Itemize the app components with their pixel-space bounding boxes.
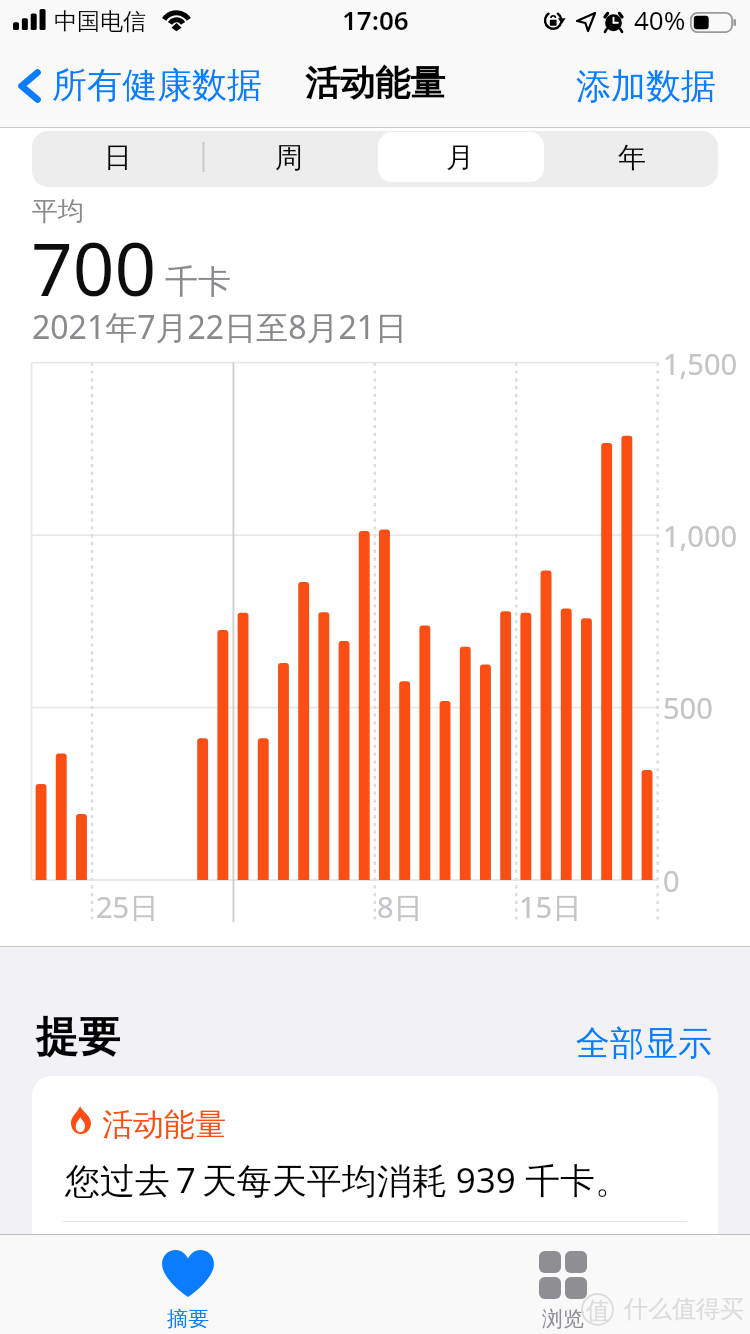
staticText: 15日	[519, 887, 582, 927]
button[interactable]: 日	[32, 131, 203, 187]
button[interactable]: 年	[546, 131, 718, 187]
staticText: 8日	[377, 887, 423, 927]
staticText: 1,500	[663, 344, 738, 383]
staticText: 周	[275, 140, 303, 175]
staticText: 40%	[634, 2, 686, 37]
staticText: 什么值得买	[624, 1294, 744, 1324]
staticText: 日	[104, 140, 132, 175]
button[interactable]: 浏览	[375, 1234, 750, 1334]
staticText: 活动能量	[305, 61, 445, 105]
staticText: 添加数据	[576, 64, 716, 108]
staticText: 500	[663, 688, 713, 727]
staticText: 25日	[96, 887, 159, 927]
staticText: 年	[618, 140, 646, 175]
staticText: 浏览	[542, 1306, 584, 1332]
button[interactable]: 摘要	[0, 1234, 375, 1334]
staticText: 千卡	[165, 261, 231, 303]
staticText: 所有健康数据	[52, 63, 262, 107]
button[interactable]: 全部显示	[560, 1012, 734, 1075]
staticText: 0	[663, 861, 680, 900]
staticText: 月	[446, 140, 474, 175]
staticText: 中国电信	[54, 7, 146, 36]
button[interactable]: 所有健康数据	[2, 56, 272, 120]
staticText: 700	[31, 218, 157, 317]
staticText: 您过去 7 天每天平均消耗 939 千卡。	[65, 1156, 630, 1204]
staticText: 平均	[32, 195, 84, 228]
button[interactable]: 活动能量	[32, 1076, 718, 1235]
staticText: 17:06	[342, 2, 409, 37]
staticText: 2021年7月22日至8月21日	[32, 305, 408, 349]
staticText: 值	[586, 1296, 610, 1326]
staticText: 全部显示	[576, 1022, 712, 1065]
button[interactable]: 月	[374, 131, 546, 187]
staticText: 摘要	[167, 1306, 209, 1332]
staticText: 提要	[36, 1011, 120, 1064]
staticText: 活动能量	[102, 1105, 226, 1144]
staticText: 1,000	[663, 516, 738, 555]
button[interactable]: 添加数据	[560, 56, 734, 120]
button[interactable]: 周	[203, 131, 374, 187]
